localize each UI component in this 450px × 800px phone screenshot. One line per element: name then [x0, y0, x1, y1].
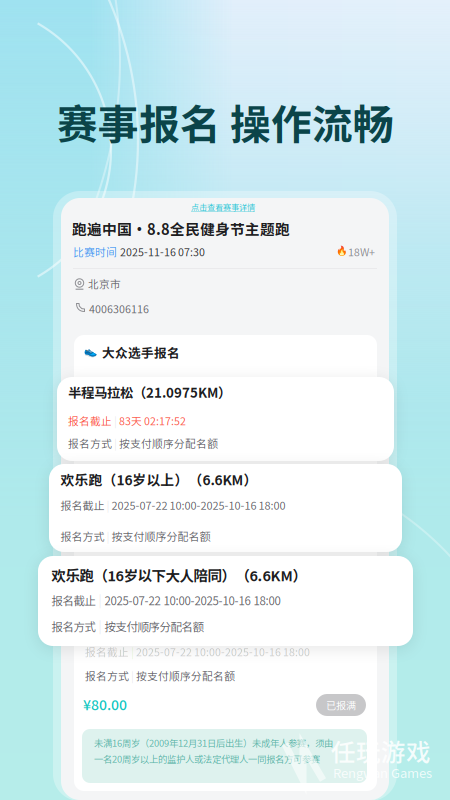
staticText: | [95, 618, 104, 635]
staticText: ¥80.00 [83, 694, 127, 714]
staticText: | [129, 644, 136, 659]
staticText: | [104, 497, 111, 513]
staticText: 大众选手报名 [102, 343, 180, 361]
staticText: 欢乐跑（16岁以下大人陪同）（6.6KM） [51, 564, 306, 585]
staticText: | [112, 413, 119, 428]
staticText: 2025-07-22 10:00-2025-10-16 18:00 [136, 644, 310, 659]
button[interactable]: 半程马拉松（21.0975KM） [0, 0, 337, 84]
staticText: | [129, 668, 136, 683]
staticText: 赛事报名 操作流畅 [57, 92, 394, 151]
staticText: 18W+ [348, 244, 375, 259]
staticText: 按支付顺序分配名额 [136, 668, 235, 683]
staticText: 👟 [84, 345, 97, 357]
staticText: 报名截止 [60, 497, 104, 513]
staticText: 按支付顺序分配名额 [104, 618, 203, 635]
staticText: | [112, 435, 119, 451]
staticText: 北京市 [88, 276, 121, 291]
staticText: 按支付顺序分配名额 [119, 435, 218, 451]
staticText: 半程马拉松（21.0975KM） [68, 382, 231, 401]
staticText: 2025-11-16 07:30 [120, 244, 205, 259]
staticText: 报名方式 [51, 618, 95, 635]
staticText: 报名方式 [68, 435, 112, 451]
button[interactable]: 欢乐跑（16岁以上）（6.6KM） [0, 0, 353, 88]
staticText: 欢乐跑（16岁以上）（6.6KM） [60, 469, 257, 489]
staticText: 报名方式 [85, 668, 129, 683]
staticText: 报名截止 [85, 644, 129, 659]
staticText: Rengwan Games [333, 763, 432, 782]
staticText: 按支付顺序分配名额 [111, 528, 210, 544]
staticText: 🔥 [336, 245, 348, 256]
staticText: 跑遍中国·8.8全民健身节主题跑 [72, 218, 290, 239]
staticText: 一名20周岁以上的监护人或法定代理人一同报名方可参赛 [94, 752, 320, 765]
staticText: 已报满 [326, 698, 356, 712]
staticText: 报名方式 [60, 528, 104, 544]
staticText: 点击查看赛事详情 [191, 201, 255, 213]
staticText: | [104, 528, 111, 544]
staticText: 2025-07-22 10:00-2025-10-16 18:00 [104, 592, 280, 609]
staticText: 2025-07-22 10:00-2025-10-16 18:00 [111, 497, 285, 513]
staticText: 4006306116 [89, 301, 149, 316]
staticText: 报名截止 [51, 592, 95, 609]
staticText: 任玩游戏 [331, 733, 431, 768]
staticText: 未满16周岁（2009年12月31日后出生）未成年人参赛，须由 [94, 736, 333, 749]
staticText: | [95, 592, 104, 609]
staticText: 83天 02:17:52 [119, 413, 186, 428]
staticText: 比赛时间 [73, 244, 117, 259]
staticText: 报名截止 [68, 413, 112, 428]
button[interactable]: 欢乐跑（16岁以下大人陪同）（6.6KM） [0, 0, 375, 90]
